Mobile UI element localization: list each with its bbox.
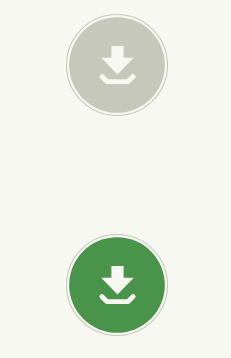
button[interactable]: Download bbox=[65, 233, 169, 337]
button[interactable]: Download unavailable bbox=[65, 13, 169, 117]
